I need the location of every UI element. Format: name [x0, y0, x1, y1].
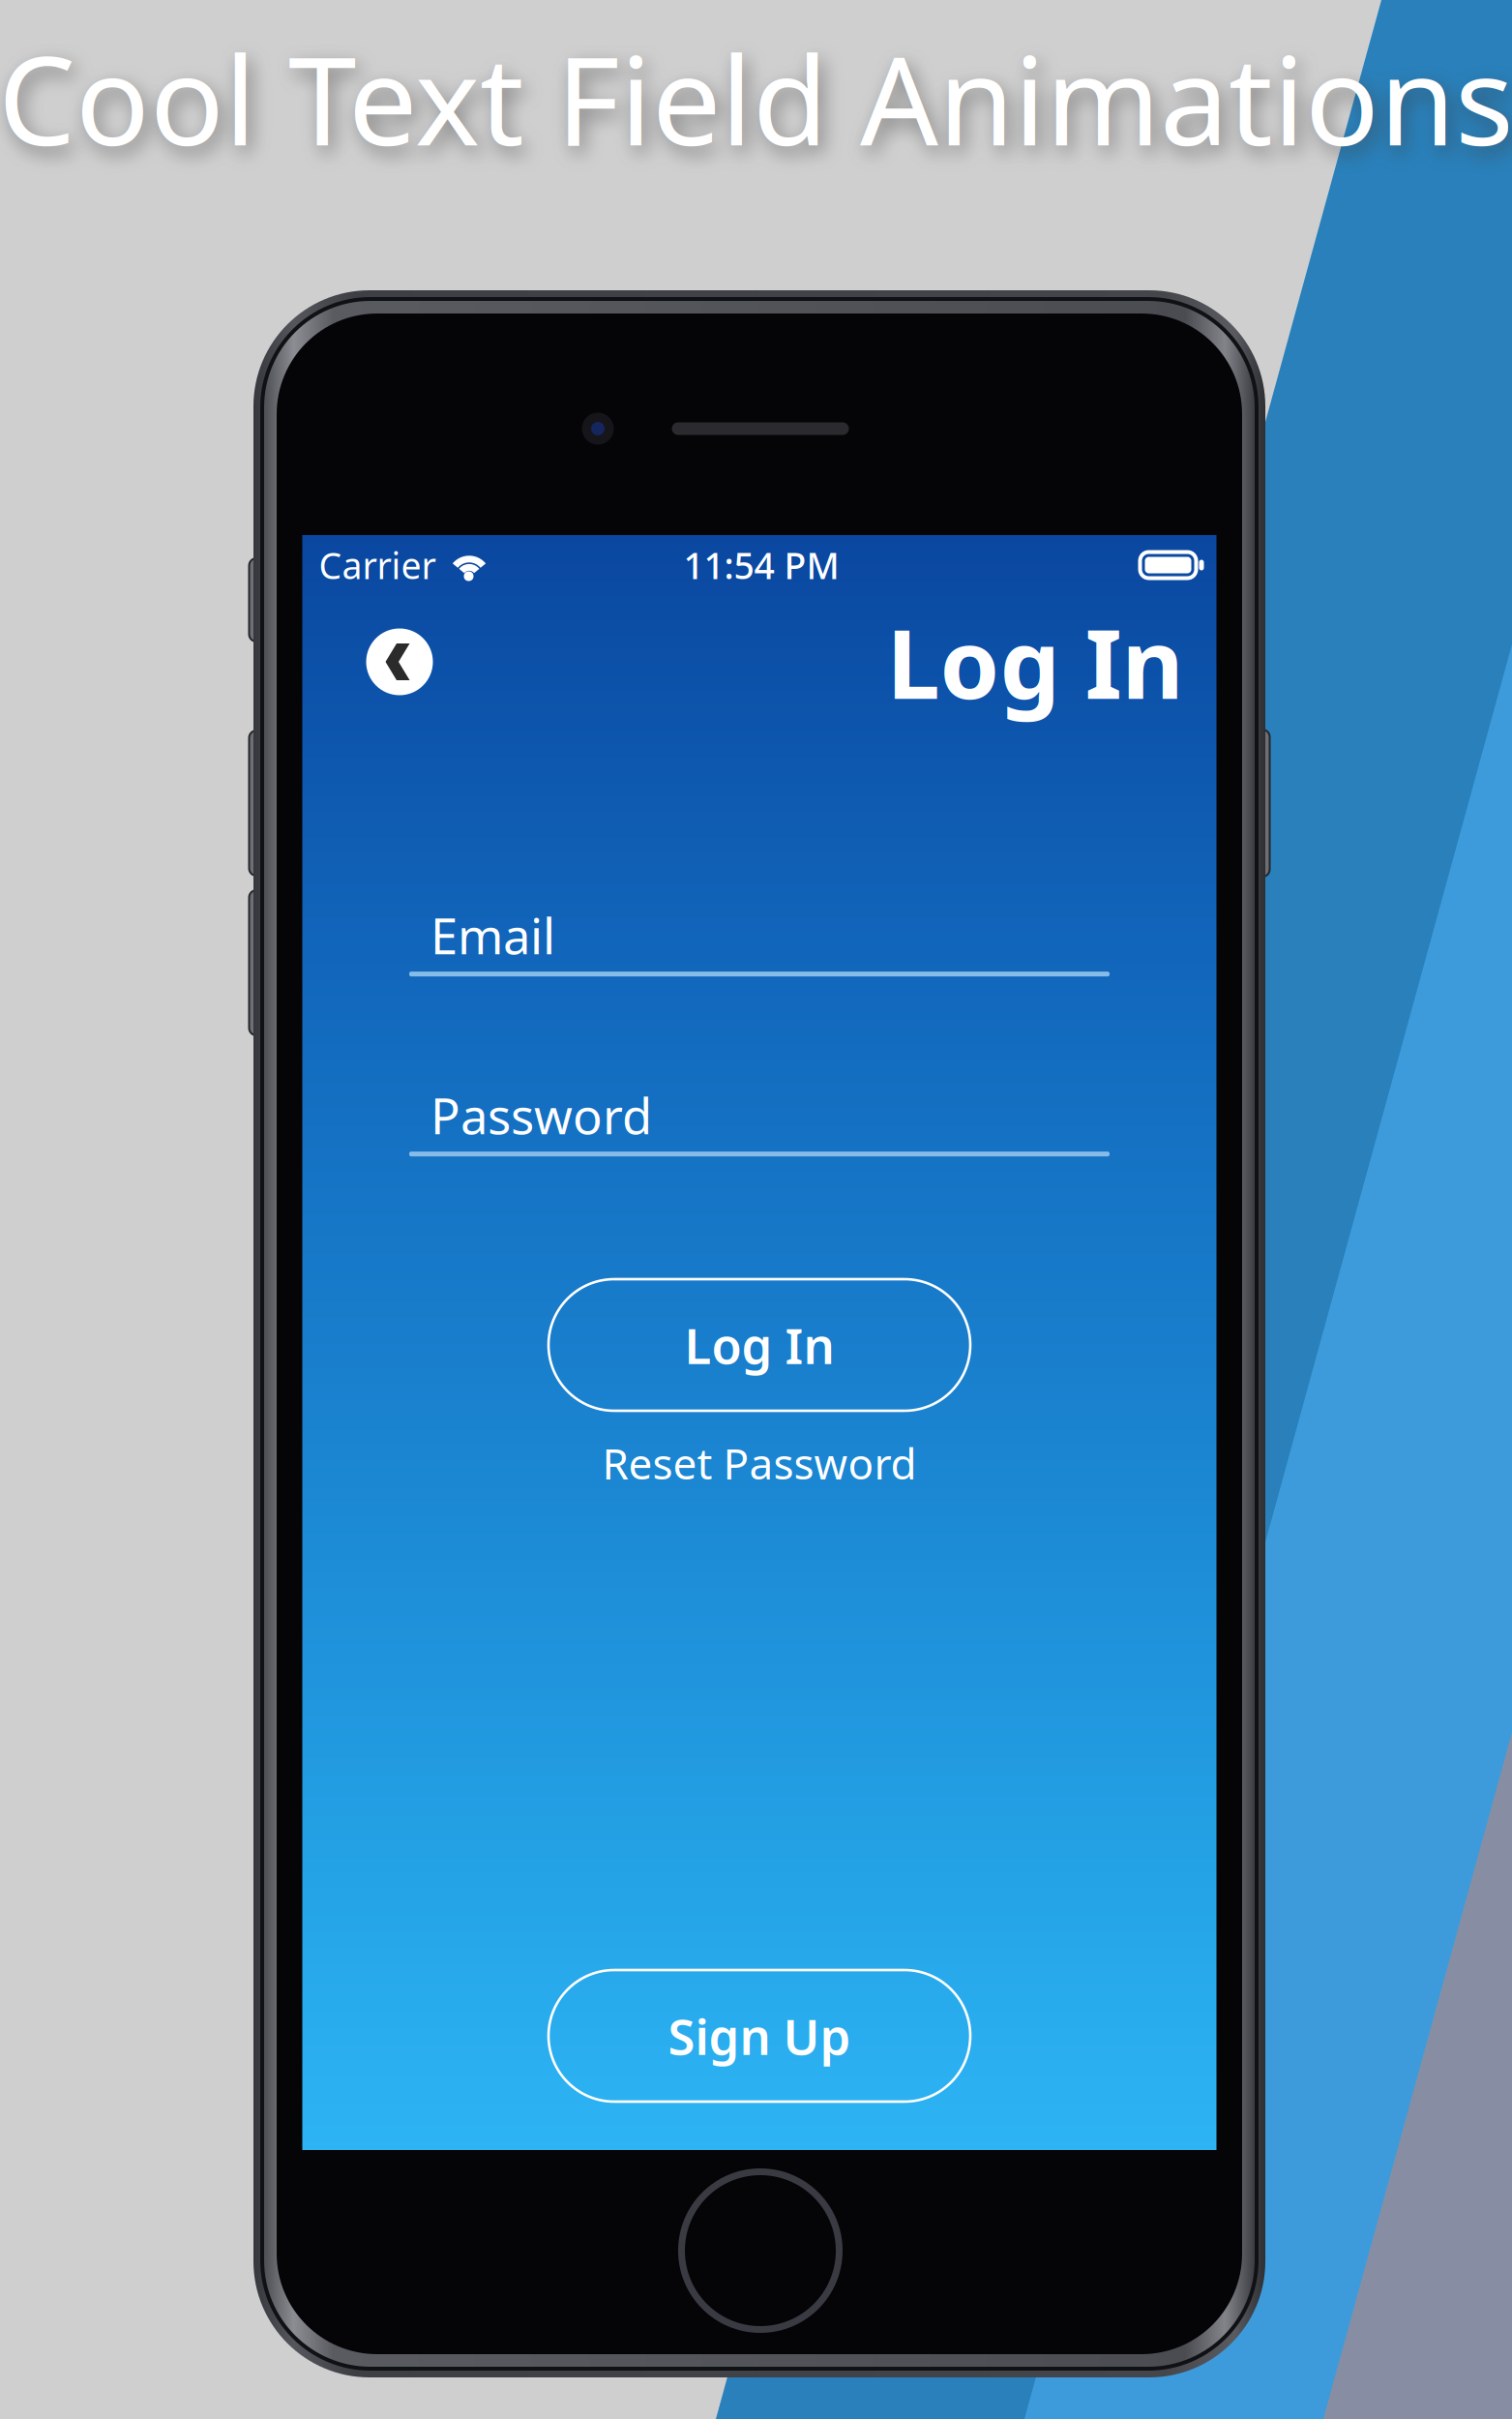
staticText: Email	[430, 903, 555, 968]
staticText: Cool Text Field Animations	[0, 16, 1512, 179]
staticText: 11:54 PM	[683, 541, 839, 589]
staticText: Carrier	[319, 541, 436, 589]
staticText: Log In	[684, 1312, 834, 1378]
staticText: Sign Up	[668, 2003, 851, 2068]
staticText: Reset Password	[602, 1435, 917, 1491]
button[interactable]: Sign Up	[548, 1970, 970, 2102]
button[interactable]: Back	[366, 628, 433, 695]
staticText: Log In	[887, 598, 1184, 725]
button[interactable]: Reset Password	[566, 1432, 953, 1494]
button[interactable]: Log In	[548, 1279, 970, 1411]
staticText: Password	[430, 1083, 652, 1148]
